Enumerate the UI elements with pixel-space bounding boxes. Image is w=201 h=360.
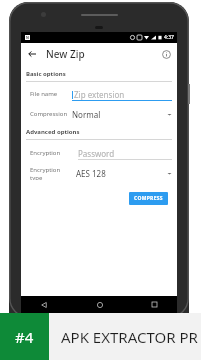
staticText: N	[26, 35, 29, 40]
button[interactable]: Encryption type	[30, 166, 172, 180]
button[interactable]: Back	[24, 46, 40, 62]
staticText: AES 128	[76, 168, 106, 179]
staticText: Basic options	[26, 70, 66, 78]
staticText: #4	[15, 327, 34, 347]
staticText: Password	[78, 148, 115, 159]
button[interactable]: Compression	[30, 107, 172, 121]
button[interactable]: File name	[30, 87, 172, 101]
staticText: Advanced options	[26, 128, 80, 136]
staticText: Encryption type	[30, 166, 72, 180]
staticText: Zip extension	[74, 89, 125, 100]
staticText: File name	[30, 90, 58, 98]
staticText: Encryption	[30, 149, 61, 157]
button[interactable]: Encryption	[30, 146, 172, 160]
staticText: New Zip	[46, 47, 85, 61]
button[interactable]: Home	[93, 298, 106, 311]
button[interactable]: Back	[37, 298, 50, 311]
staticText: COMPRESS	[134, 195, 163, 202]
button[interactable]: Recent apps	[148, 298, 161, 311]
button[interactable]: COMPRESS	[129, 192, 168, 205]
staticText: 4:37	[164, 34, 174, 41]
button[interactable]: Info	[158, 46, 174, 62]
staticText: Compression	[30, 110, 68, 118]
staticText: Normal	[72, 109, 101, 120]
staticText: APK EXTRACTOR PR	[61, 327, 198, 347]
